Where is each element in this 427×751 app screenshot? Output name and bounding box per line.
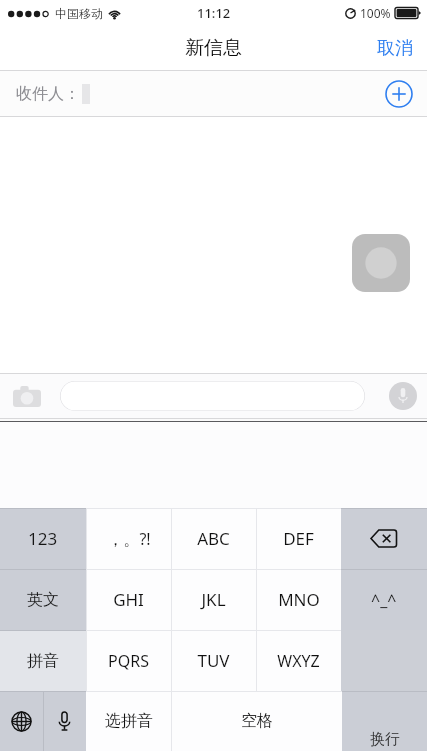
staticText: MNO [278,588,320,611]
staticText: TUV [197,649,230,672]
staticText: DEF [283,527,314,550]
button[interactable]: Backspace [341,508,427,569]
button[interactable] [342,691,427,751]
staticText: ，。?! [107,528,151,550]
staticText: ^_^ [371,589,397,611]
button[interactable]: MNO [256,569,341,630]
staticText: 123 [28,527,58,550]
button[interactable]: WXYZ [256,630,341,691]
button[interactable]: 取消 [363,29,427,68]
staticText: 取消 [377,37,413,60]
staticText: 空格 [241,711,273,731]
staticText: 100% [360,5,391,21]
staticText: PQRS [108,650,149,672]
button[interactable]: GHI [86,569,171,630]
button[interactable]: 拼音 [0,630,86,691]
button[interactable]: Add contact [385,80,413,108]
button[interactable]: Dictation [43,691,86,751]
button[interactable] [352,234,410,292]
button[interactable]: ^_^ [341,569,427,630]
button[interactable]: 英文 [0,569,86,630]
button[interactable]: 123 [0,508,86,569]
staticText: JKL [201,588,226,611]
button[interactable]: 空格 [171,691,342,751]
button[interactable]: Camera [11,380,43,412]
staticText: 收件人： [16,84,80,104]
staticText: 拼音 [27,651,59,671]
button[interactable]: ABC [171,508,256,569]
staticText: 英文 [27,590,59,610]
button[interactable]: ，。?! [86,508,171,569]
button[interactable]: DEF [256,508,341,569]
button[interactable]: JKL [171,569,256,630]
staticText: GHI [113,588,144,611]
staticText: WXYZ [277,650,320,672]
button[interactable]: TUV [171,630,256,691]
staticText: 选拼音 [105,711,153,731]
staticText: 新信息 [185,36,242,60]
button[interactable]: 收件人： [0,71,427,116]
button[interactable]: 选拼音 [86,691,171,751]
button[interactable] [60,381,365,411]
staticText: 11:12 [197,4,231,22]
button[interactable]: PQRS [86,630,171,691]
staticText: 换行 [370,730,400,749]
staticText: 中国移动 [55,6,103,21]
button[interactable]: Switch keyboard [0,691,43,751]
staticText: ABC [197,527,230,550]
button[interactable]: Voice message [389,382,417,410]
